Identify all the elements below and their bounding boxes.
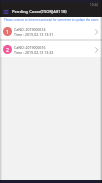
button[interactable]: 1 [0, 23, 102, 39]
staticText: 10:44 [90, 3, 98, 7]
staticText: Pending Cases(TSORJA8118) [12, 9, 67, 15]
staticText: CaNO: 2019000616 Time : 2019-02-13 13:32 [14, 45, 54, 55]
staticText: 2 [6, 46, 9, 53]
staticText: Please connect to Internet and wait for … [4, 18, 99, 22]
button[interactable]: 2 [0, 41, 102, 57]
button[interactable]: Menu [0, 6, 12, 17]
staticText: 1 [6, 28, 9, 35]
staticText: CaNO: 2019000614 Time : 2019-02-13 13:31 [14, 27, 54, 37]
